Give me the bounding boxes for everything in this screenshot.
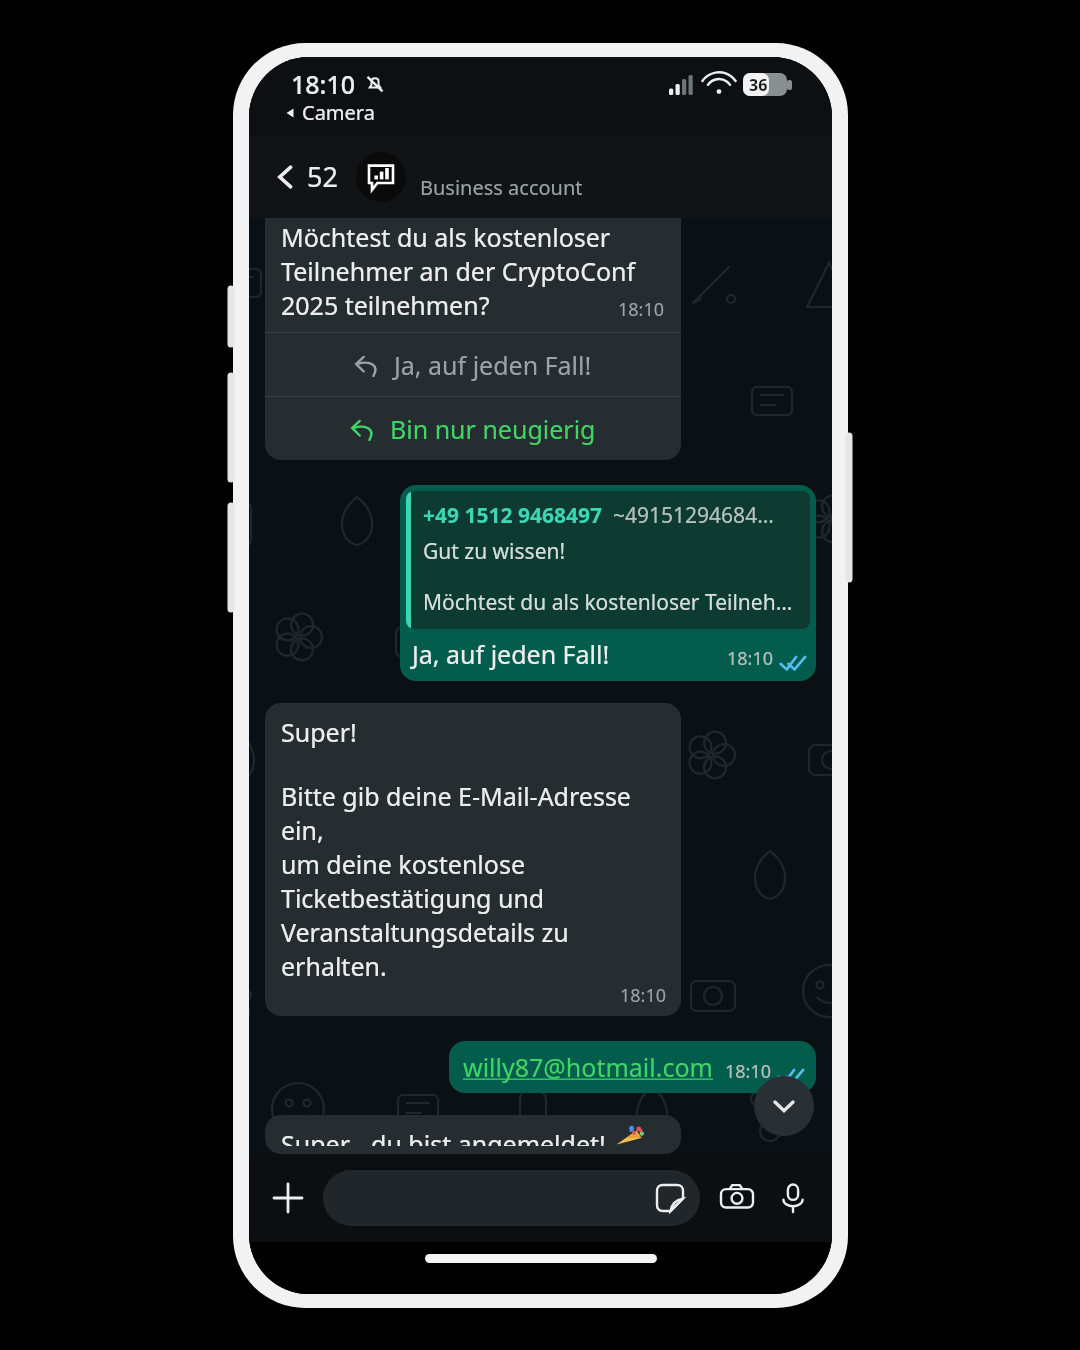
staticText: Camera: [302, 99, 375, 126]
button[interactable]: Business account: [356, 152, 816, 202]
button[interactable]: +49 1512 9468497: [400, 485, 816, 681]
staticText: Ticketbestätigung und: [281, 881, 545, 915]
button[interactable]: Camera: [712, 1173, 762, 1223]
button[interactable]: Back: [265, 150, 346, 203]
staticText: 18:10: [618, 297, 665, 322]
staticText: 18:10: [727, 646, 774, 671]
staticText: Bitte gib deine E-Mail-Adresse ein,: [281, 779, 667, 847]
staticText: 18:10: [291, 67, 356, 101]
other: Back: [273, 164, 299, 190]
staticText: Business account: [420, 174, 583, 201]
staticText: 18:10: [620, 983, 667, 1008]
staticText: 2025 teilnehmen?: [281, 288, 490, 322]
other: Sticker: [656, 1184, 684, 1212]
staticText: Gut zu wissen!: [423, 537, 566, 566]
staticText: 36: [749, 74, 768, 96]
staticText: ~49151294684…: [613, 501, 774, 530]
staticText: Ja, auf jeden Fall!: [394, 348, 592, 382]
staticText: willy87@hotmail.com: [463, 1050, 713, 1084]
staticText: Super!: [281, 715, 357, 749]
button[interactable]: Voice message: [768, 1173, 818, 1223]
staticText: Bin nur neugierig: [390, 412, 596, 446]
button[interactable]: Bin nur neugierig: [265, 397, 681, 460]
staticText: Möchtest du als kostenloser: [281, 220, 611, 254]
button[interactable]: willy87@hotmail.com: [449, 1041, 816, 1093]
button[interactable]: Super - du bist angemeldet!: [265, 1115, 681, 1154]
staticText: um deine kostenlose: [281, 847, 525, 881]
staticText: Ja, auf jeden Fall!: [412, 637, 610, 671]
staticText: Super - du bist angemeldet!: [281, 1127, 606, 1146]
button[interactable]: Super!: [265, 703, 681, 1016]
button[interactable]: Attach: [263, 1173, 313, 1223]
staticText: Möchtest du als kostenloser Teilnehmer a…: [423, 588, 800, 617]
button[interactable]: Scroll to bottom: [754, 1076, 814, 1136]
staticText: Veranstaltungsdetails zu erhalten.: [281, 915, 667, 983]
button[interactable]: Ja, auf jeden Fall!: [265, 333, 681, 396]
staticText: 18:10: [725, 1059, 772, 1084]
staticText: +49 1512 9468497: [423, 501, 603, 530]
button[interactable]: Sticker: [323, 1170, 700, 1226]
staticText: Teilnehmer an der CryptoConf: [281, 254, 636, 288]
staticText: 52: [307, 158, 338, 195]
